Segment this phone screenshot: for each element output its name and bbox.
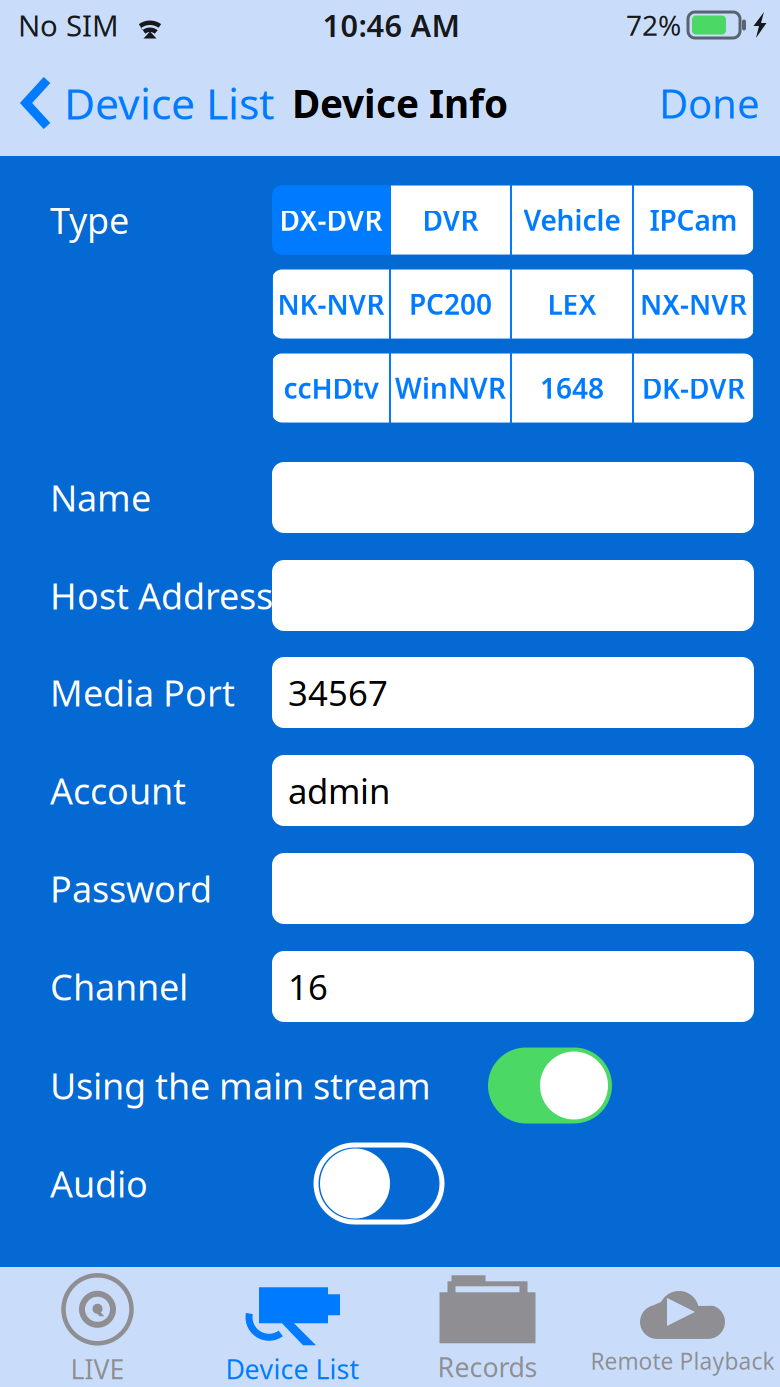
staticText: Using the main stream bbox=[50, 1062, 431, 1109]
staticText: admin bbox=[288, 767, 390, 813]
staticText: DK-DVR bbox=[642, 369, 745, 407]
button[interactable]: NX-NVR bbox=[634, 269, 753, 338]
button[interactable]: DX-DVR bbox=[273, 185, 389, 254]
staticText: Device List bbox=[225, 1351, 359, 1387]
staticText: Name bbox=[50, 474, 151, 521]
staticText: 1648 bbox=[540, 369, 604, 407]
staticText: WinNVR bbox=[395, 369, 506, 407]
staticText: Done bbox=[659, 76, 760, 129]
button[interactable]: NK-NVR bbox=[273, 269, 389, 338]
staticText: No SIM bbox=[18, 5, 119, 44]
staticText: LEX bbox=[547, 285, 596, 323]
staticText: Type bbox=[50, 196, 129, 244]
staticText: Remote Playback bbox=[590, 1346, 774, 1376]
staticText: NK-NVR bbox=[277, 285, 384, 323]
button[interactable]: LIVE bbox=[0, 1263, 195, 1387]
staticText: NX-NVR bbox=[640, 285, 747, 323]
button[interactable]: DVR bbox=[391, 185, 510, 254]
button[interactable]: 1648 bbox=[512, 353, 632, 422]
staticText: Records bbox=[437, 1349, 537, 1385]
staticText: Account bbox=[50, 767, 186, 814]
staticText: DX-DVR bbox=[279, 201, 382, 239]
button[interactable]: PC200 bbox=[391, 269, 510, 338]
staticText: Media Port bbox=[50, 669, 235, 716]
button[interactable]: DK-DVR bbox=[634, 353, 753, 422]
button[interactable]: Vehicle bbox=[512, 185, 632, 254]
button[interactable]: Done bbox=[639, 62, 780, 143]
staticText: 34567 bbox=[288, 669, 388, 715]
staticText: PC200 bbox=[409, 285, 492, 323]
button[interactable]: IPCam bbox=[634, 185, 753, 254]
staticText: Channel bbox=[50, 963, 188, 1010]
staticText: ccHDtv bbox=[283, 369, 378, 407]
button[interactable]: Device List bbox=[0, 61, 278, 145]
button[interactable]: Device List bbox=[195, 1263, 390, 1387]
staticText: LIVE bbox=[70, 1351, 124, 1387]
button[interactable]: Remote Playback bbox=[585, 1274, 780, 1380]
staticText: 16 bbox=[288, 963, 328, 1009]
staticText: 72% bbox=[626, 6, 681, 44]
staticText: DVR bbox=[422, 201, 478, 239]
staticText: Password bbox=[50, 865, 212, 912]
staticText: Vehicle bbox=[523, 201, 620, 239]
button[interactable]: ccHDtv bbox=[273, 353, 389, 422]
button[interactable]: Records bbox=[390, 1265, 585, 1387]
button[interactable]: WinNVR bbox=[391, 353, 510, 422]
staticText: Device List bbox=[64, 75, 274, 131]
staticText: Host Address bbox=[50, 572, 273, 619]
staticText: Audio bbox=[50, 1160, 148, 1207]
staticText: Device Info bbox=[292, 77, 508, 129]
staticText: 10:46 AM bbox=[322, 5, 459, 45]
staticText: IPCam bbox=[649, 201, 737, 239]
button[interactable] bbox=[316, 1145, 442, 1222]
button[interactable] bbox=[488, 1047, 612, 1123]
button[interactable]: LEX bbox=[512, 269, 632, 338]
